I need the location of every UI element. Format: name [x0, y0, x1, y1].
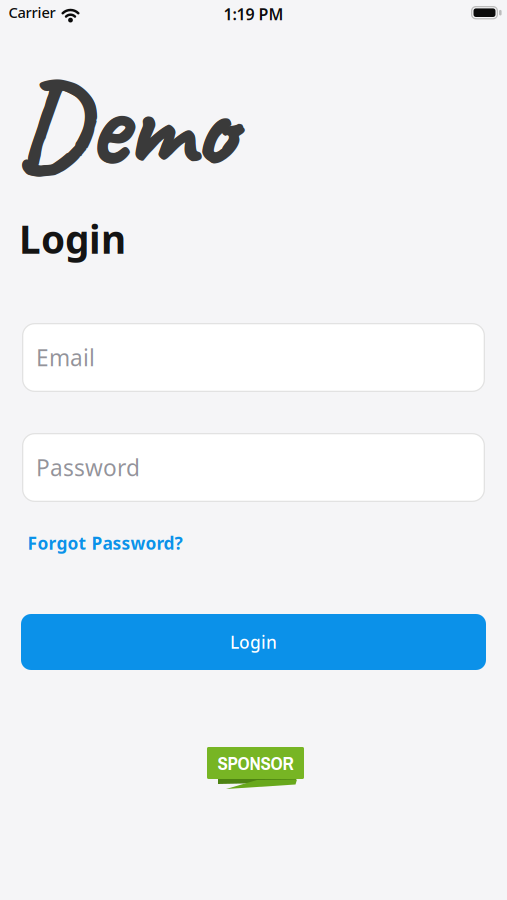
button[interactable]: Password [22, 433, 485, 502]
staticText: Forgot Password? [27, 531, 182, 554]
staticText: Login [230, 630, 277, 653]
staticText: SPONSOR [217, 750, 293, 776]
staticText: Demo [16, 51, 234, 199]
staticText: Demo [17, 52, 235, 199]
staticText: 1:19 PM [223, 3, 283, 24]
button[interactable]: Forgot Password? [27, 531, 182, 554]
staticText: Email [36, 342, 95, 372]
staticText: Password [36, 452, 140, 482]
staticText: Demo [17, 50, 235, 198]
button[interactable]: Email [22, 323, 485, 392]
staticText: Login [19, 213, 126, 264]
button[interactable]: SPONSOR [207, 747, 304, 793]
button[interactable]: Login [21, 614, 486, 670]
staticText: Carrier [8, 2, 55, 22]
